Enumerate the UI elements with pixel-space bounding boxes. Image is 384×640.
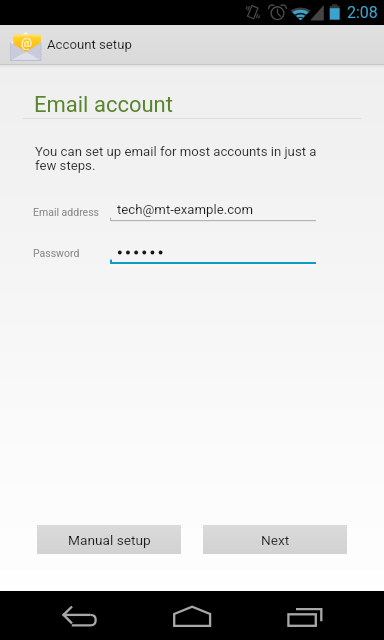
staticText: Email address <box>33 206 100 218</box>
staticText: tech@mt-example.com <box>117 202 254 217</box>
button[interactable]: Home <box>160 591 224 640</box>
staticText: @ <box>21 36 33 50</box>
button[interactable] <box>110 212 316 228</box>
button[interactable]: @ <box>0 25 384 64</box>
staticText: Account setup <box>47 37 132 52</box>
staticText: You can set up email for most accounts i… <box>35 144 317 173</box>
staticText: Password <box>33 247 80 259</box>
staticText: Manual setup <box>68 532 151 548</box>
staticText: 2:08 <box>347 3 378 22</box>
staticText: Next <box>261 532 290 548</box>
button[interactable] <box>110 253 316 269</box>
button[interactable]: Manual setup <box>37 525 181 554</box>
button[interactable]: Back <box>48 591 112 640</box>
button[interactable]: Next <box>203 525 347 554</box>
button[interactable]: Recent apps <box>272 591 336 640</box>
staticText: Email account <box>34 92 173 118</box>
